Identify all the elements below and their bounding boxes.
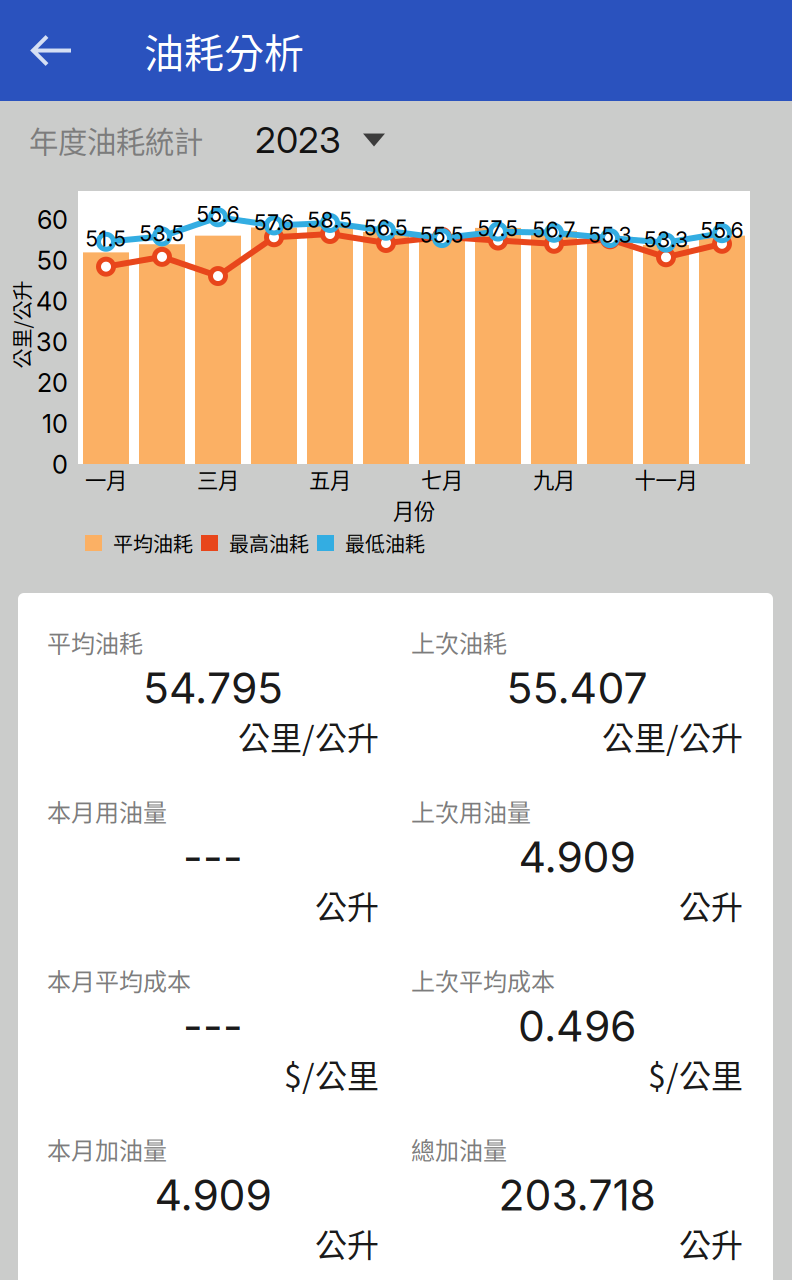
staticText: 2023 bbox=[255, 118, 341, 162]
staticText: 七月 bbox=[421, 464, 463, 494]
staticText: 本月用油量 bbox=[47, 794, 167, 828]
staticText: --- bbox=[183, 831, 243, 883]
staticText: 上次油耗 bbox=[411, 625, 507, 659]
staticText: 4.909 bbox=[154, 1169, 271, 1221]
staticText: 50 bbox=[37, 245, 68, 276]
staticText: 54.795 bbox=[143, 662, 283, 714]
staticText: 九月 bbox=[533, 464, 575, 494]
staticText: 55.3 bbox=[588, 222, 631, 248]
staticText: 公里/公升 bbox=[238, 713, 379, 759]
staticText: 公升 bbox=[679, 1220, 743, 1266]
staticText: 40 bbox=[36, 286, 68, 317]
staticText: 公升 bbox=[315, 1220, 379, 1266]
staticText: 平均油耗 bbox=[47, 625, 143, 659]
staticText: $/公里 bbox=[648, 1051, 743, 1097]
staticText: 本月加油量 bbox=[47, 1132, 167, 1166]
staticText: 公里/公升 bbox=[0, 310, 65, 339]
staticText: 57.5 bbox=[477, 216, 518, 241]
staticText: 55.6 bbox=[196, 201, 239, 227]
staticText: 203.718 bbox=[498, 1169, 655, 1221]
staticText: 最低油耗 bbox=[345, 528, 425, 557]
staticText: 55.6 bbox=[700, 217, 743, 243]
staticText: 公升 bbox=[679, 882, 743, 928]
staticText: --- bbox=[183, 1000, 243, 1052]
staticText: 三月 bbox=[197, 464, 239, 494]
staticText: 上次用油量 bbox=[411, 794, 531, 828]
staticText: 56.5 bbox=[364, 215, 408, 241]
staticText: 57.6 bbox=[254, 209, 294, 235]
staticText: 上次平均成本 bbox=[411, 963, 555, 997]
staticText: 公里/公升 bbox=[602, 713, 743, 759]
staticText: 總加油量 bbox=[411, 1132, 507, 1166]
staticText: 53.3 bbox=[644, 227, 688, 252]
staticText: 51.5 bbox=[85, 226, 126, 252]
staticText: 油耗分析 bbox=[144, 21, 304, 79]
staticText: 公升 bbox=[315, 882, 379, 928]
staticText: 五月 bbox=[309, 464, 351, 494]
staticText: 平均油耗 bbox=[113, 528, 193, 557]
staticText: 4.909 bbox=[518, 831, 635, 883]
staticText: 55.5 bbox=[420, 222, 464, 248]
staticText: 0 bbox=[52, 449, 68, 480]
staticText: 10 bbox=[42, 408, 68, 439]
staticText: 最高油耗 bbox=[229, 528, 309, 557]
staticText: 年度油耗統計 bbox=[29, 119, 203, 161]
staticText: 53.5 bbox=[139, 221, 184, 246]
staticText: 月份 bbox=[393, 495, 435, 525]
staticText: 60 bbox=[37, 204, 68, 235]
staticText: $/公里 bbox=[284, 1051, 379, 1097]
staticText: 0.496 bbox=[518, 1000, 636, 1052]
staticText: 56.7 bbox=[532, 217, 575, 243]
staticText: 58.5 bbox=[307, 207, 352, 233]
staticText: 一月 bbox=[85, 464, 127, 494]
staticText: 十一月 bbox=[634, 464, 697, 494]
staticText: 30 bbox=[36, 327, 68, 357]
staticText: 本月平均成本 bbox=[47, 963, 191, 997]
staticText: 55.407 bbox=[506, 662, 647, 714]
button[interactable]: Back bbox=[0, 0, 104, 101]
staticText: 20 bbox=[37, 368, 68, 398]
